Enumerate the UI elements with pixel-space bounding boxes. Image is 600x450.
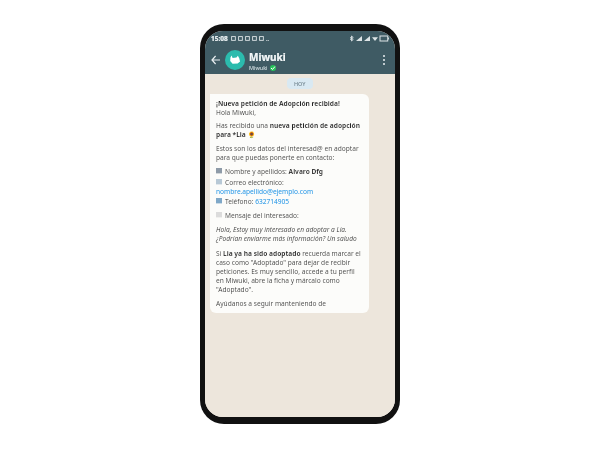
staticText: Correo electrónico: <box>225 178 284 187</box>
staticText: Teléfono: 632714905 <box>225 197 290 206</box>
staticText: Ayúdanos a seguir manteniendo de <box>216 299 327 308</box>
staticText: Has recibido una nueva petición de adopc… <box>216 121 363 139</box>
staticText: ¡Nueva petición de Adopción recibida! <box>216 99 340 108</box>
staticText: Hola Miwuki, <box>216 108 256 117</box>
button[interactable]: Back <box>209 53 223 67</box>
staticText: nombre.apellido@ejemplo.com <box>216 187 314 196</box>
staticText: Si Lia ya ha sido adoptado recuerda marc… <box>216 249 363 294</box>
staticText: 15:08 <box>211 34 228 43</box>
staticText: Hola, Estoy muy interesado en adoptar a … <box>216 225 363 243</box>
button[interactable]: HOY <box>294 80 306 87</box>
button[interactable]: Miwuki <box>249 50 377 71</box>
staticText: Nombre y apellidos: Alvaro Dfg <box>225 167 324 176</box>
button[interactable]: ¡Nueva petición de Adopción recibida! <box>210 94 369 313</box>
staticText: Miwuki <box>249 64 268 71</box>
staticText: .. <box>266 35 270 43</box>
staticText: Mensaje del interesado: <box>225 211 299 220</box>
button[interactable]: More options <box>377 53 391 67</box>
staticText: HOY <box>294 80 306 87</box>
button[interactable]: Profile photo <box>225 50 245 70</box>
staticText: Estos son los datos del interesad@ en ad… <box>216 144 363 162</box>
staticText: Miwuki <box>249 50 286 64</box>
